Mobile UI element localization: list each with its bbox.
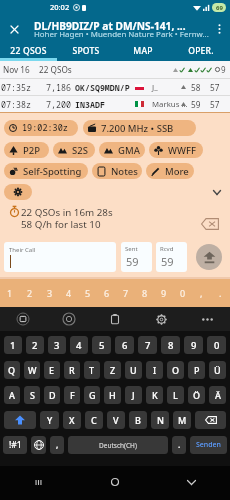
- button[interactable]: GMA: [99, 142, 145, 158]
- button[interactable]: Z: [104, 361, 121, 379]
- button[interactable]: !#1: [3, 436, 27, 454]
- button[interactable]: SPOTS: [57, 44, 114, 61]
- button[interactable]: F: [64, 386, 80, 404]
- staticText: 4: [76, 339, 82, 352]
- button[interactable]: 3: [40, 279, 59, 307]
- staticText: 7: [145, 339, 151, 352]
- button[interactable]: Ä: [209, 386, 226, 404]
- button[interactable]: 1: [4, 336, 22, 354]
- button[interactable]: Back: [153, 466, 230, 500]
- button[interactable]: M: [173, 411, 191, 429]
- button[interactable]: 5: [78, 279, 97, 307]
- button[interactable]: 2: [20, 279, 40, 307]
- button[interactable]: MAP: [114, 44, 172, 61]
- button[interactable]: More options: [209, 19, 229, 39]
- staticText: Z: [110, 364, 116, 376]
- button[interactable]: ,: [50, 436, 64, 454]
- button[interactable]: Rcvd: [156, 242, 187, 272]
- button[interactable]: 7: [116, 279, 135, 307]
- button[interactable]: C: [85, 411, 103, 429]
- staticText: .: [178, 439, 181, 451]
- staticText: 22 QSOS: [10, 45, 47, 57]
- button[interactable]: Sent: [121, 242, 152, 272]
- button[interactable]: 1: [0, 279, 20, 307]
- button[interactable]: Home: [76, 466, 153, 500]
- button[interactable]: B: [129, 411, 147, 429]
- button[interactable]: V: [107, 411, 125, 429]
- staticText: 22 QSOs in 16m 28s: [21, 206, 113, 219]
- button[interactable]: N: [151, 411, 169, 429]
- button[interactable]: R: [64, 361, 80, 379]
- button[interactable]: L: [167, 386, 184, 404]
- button[interactable]: Deutsch(CH): [68, 436, 168, 454]
- button[interactable]: 7: [138, 336, 157, 354]
- staticText: 58: [191, 82, 201, 93]
- button[interactable]: Recents: [0, 466, 76, 500]
- button[interactable]: P2P: [4, 142, 49, 158]
- button[interactable]: 0: [207, 336, 226, 354]
- button[interactable]: Their Call: [4, 242, 116, 272]
- button[interactable]: More: [146, 163, 194, 179]
- button[interactable]: 3: [48, 336, 66, 354]
- button[interactable]: 22 QSOS: [0, 44, 57, 61]
- button[interactable]: Shift: [4, 411, 36, 429]
- button[interactable]: Y: [40, 411, 59, 429]
- button[interactable]: Self-Spotting: [4, 163, 88, 179]
- button[interactable]: Log QSO: [196, 244, 222, 270]
- button[interactable]: Settings: [4, 184, 32, 200]
- button[interactable]: Close: [2, 17, 26, 41]
- button[interactable]: Backspace: [195, 411, 226, 429]
- button[interactable]: I: [146, 361, 163, 379]
- button[interactable]: 9: [184, 336, 203, 354]
- button[interactable]: 9: [154, 279, 173, 307]
- button[interactable]: Ö: [188, 386, 205, 404]
- button[interactable]: ,: [192, 279, 211, 307]
- button[interactable]: More: [184, 307, 230, 331]
- button[interactable]: Expand: [207, 185, 226, 199]
- button[interactable]: Notes: [92, 163, 142, 179]
- button[interactable]: 4: [59, 279, 78, 307]
- button[interactable]: Clipboard: [92, 307, 138, 331]
- button[interactable]: H: [104, 386, 121, 404]
- button[interactable]: 6: [115, 336, 134, 354]
- button[interactable]: 07:35z: [0, 79, 230, 95]
- staticText: 6: [104, 287, 110, 299]
- button[interactable]: X: [63, 411, 81, 429]
- button[interactable]: Emoji: [46, 307, 92, 331]
- button[interactable]: 5: [92, 336, 111, 354]
- button[interactable]: W: [24, 361, 40, 379]
- button[interactable]: Switch language: [31, 436, 46, 454]
- button[interactable]: 8: [135, 279, 154, 307]
- button[interactable]: U: [125, 361, 142, 379]
- button[interactable]: E: [44, 361, 60, 379]
- button[interactable]: Delete last QSO: [199, 216, 221, 232]
- button[interactable]: P: [188, 361, 205, 379]
- button[interactable]: K: [146, 386, 163, 404]
- button[interactable]: 8: [161, 336, 180, 354]
- button[interactable]: 0: [173, 279, 192, 307]
- button[interactable]: 19:02:30z: [4, 120, 78, 136]
- button[interactable]: Text edit: [0, 307, 46, 331]
- button[interactable]: 2: [26, 336, 44, 354]
- button[interactable]: T: [84, 361, 100, 379]
- button[interactable]: WWFF: [149, 142, 203, 158]
- button[interactable]: Ü: [209, 361, 226, 379]
- button[interactable]: Settings: [138, 307, 184, 331]
- button[interactable]: S: [24, 386, 40, 404]
- button[interactable]: Q: [4, 361, 20, 379]
- button[interactable]: Senden: [190, 436, 227, 454]
- button[interactable]: 7.200 MHz • SSB: [83, 120, 196, 136]
- button[interactable]: .: [211, 279, 230, 307]
- button[interactable]: S2S: [53, 142, 95, 158]
- staticText: 3: [47, 287, 53, 299]
- button[interactable]: G: [84, 386, 100, 404]
- button[interactable]: 07:38z: [0, 96, 230, 112]
- button[interactable]: O: [167, 361, 184, 379]
- button[interactable]: 6: [97, 279, 116, 307]
- button[interactable]: OPER.: [172, 44, 230, 61]
- button[interactable]: A: [4, 386, 20, 404]
- button[interactable]: 4: [70, 336, 88, 354]
- button[interactable]: .: [172, 436, 186, 454]
- button[interactable]: D: [44, 386, 60, 404]
- button[interactable]: J: [125, 386, 142, 404]
